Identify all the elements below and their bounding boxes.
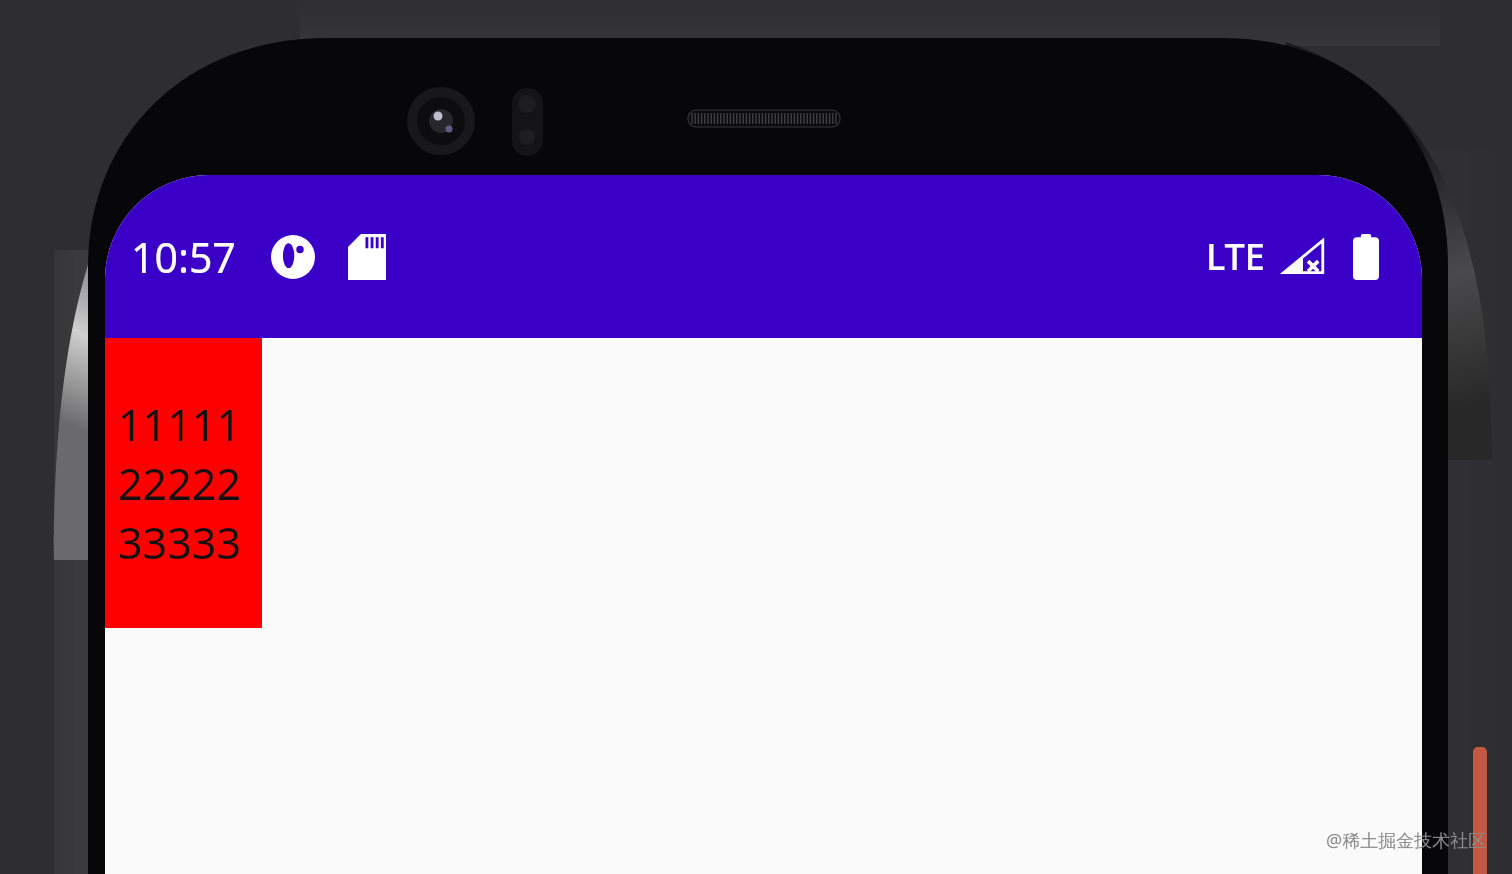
- staticText: 11111: [118, 395, 241, 454]
- staticText: 22222: [118, 454, 241, 513]
- button[interactable]: 11111: [105, 338, 262, 628]
- staticText: 33333: [118, 513, 241, 572]
- staticText: 10:57: [131, 229, 236, 285]
- staticText: LTE: [1206, 232, 1265, 281]
- button[interactable]: Battery: [1343, 234, 1389, 280]
- staticText: @稀土掘金技术社区: [1326, 828, 1487, 853]
- button[interactable]: Do not disturb: [270, 234, 316, 280]
- button[interactable]: No signal: [1279, 233, 1327, 281]
- button[interactable]: SD card: [344, 234, 390, 280]
